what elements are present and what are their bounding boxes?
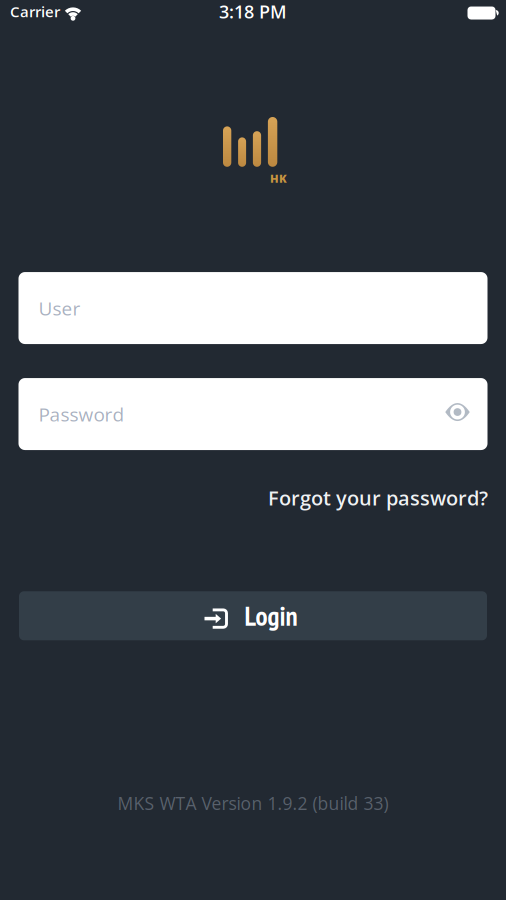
staticText: Carrier [10,1,60,22]
button[interactable]: Login [19,591,487,640]
staticText: 3:18 PM [219,0,287,24]
staticText: User [38,295,80,321]
staticText: Login [244,598,297,633]
button[interactable]: Show password [443,403,471,425]
staticText: HK [270,171,287,186]
staticText: Forgot your password? [268,484,488,511]
button[interactable]: Forgot your password? [268,484,488,511]
staticText: MKS WTA Version 1.9.2 (build 33) [117,791,388,815]
staticText: Password [38,401,124,427]
